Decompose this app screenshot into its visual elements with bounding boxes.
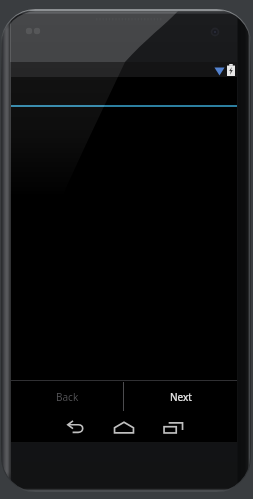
button[interactable]: Home: [110, 412, 138, 442]
button[interactable]: Back: [11, 381, 123, 412]
button[interactable]: Back: [61, 412, 89, 442]
staticText: Back: [56, 390, 79, 404]
staticText: Next: [170, 390, 192, 404]
button[interactable]: Recent apps: [159, 412, 187, 442]
button[interactable]: Next: [124, 381, 237, 412]
